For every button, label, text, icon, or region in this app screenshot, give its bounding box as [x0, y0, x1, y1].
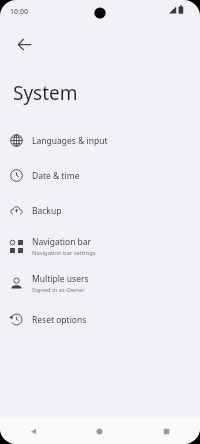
staticText: Reset options: [32, 314, 87, 326]
button[interactable]: Multiple users: [0, 265, 200, 302]
button[interactable]: Backup: [0, 193, 200, 228]
staticText: 10:00: [10, 7, 28, 17]
staticText: Date & time: [32, 170, 80, 182]
staticText: Navigation bar settings: [32, 249, 96, 257]
button[interactable]: Languages & input: [0, 123, 200, 158]
staticText: Navigation bar: [32, 236, 92, 248]
staticText: Backup: [32, 205, 62, 217]
staticText: Signed in as Owner: [32, 286, 85, 294]
staticText: System: [13, 80, 78, 106]
button[interactable]: Date & time: [0, 158, 200, 193]
button[interactable]: Home: [66, 418, 133, 444]
staticText: Multiple users: [32, 273, 89, 285]
button[interactable]: Reset options: [0, 302, 200, 337]
button[interactable]: Back: [0, 418, 66, 444]
button[interactable]: Recent apps: [133, 418, 200, 444]
button[interactable]: Back: [6, 26, 42, 62]
button[interactable]: Navigation bar: [0, 228, 200, 265]
staticText: Languages & input: [32, 135, 108, 147]
